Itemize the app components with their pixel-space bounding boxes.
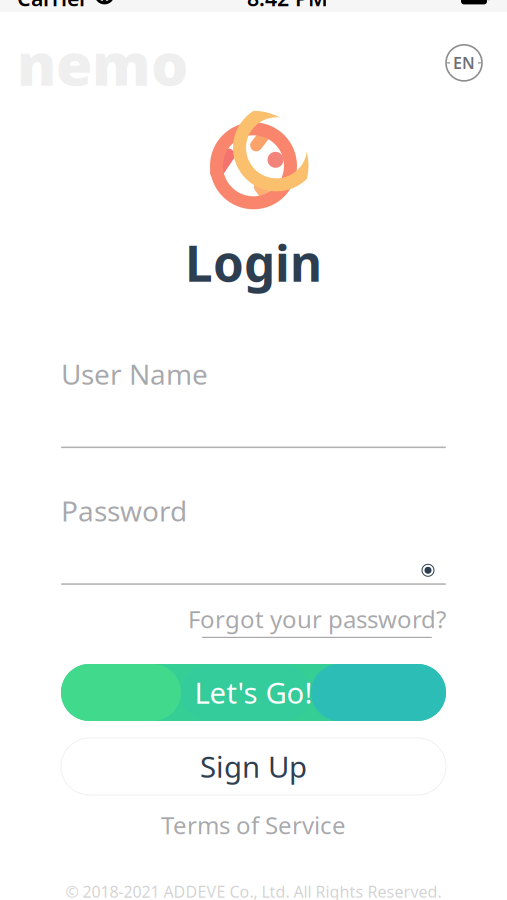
button[interactable]: Terms of Service xyxy=(141,803,366,847)
staticText: Password xyxy=(61,492,187,529)
button[interactable]: Show password xyxy=(410,558,446,582)
staticText: Login xyxy=(185,230,322,295)
button[interactable]: Language: English xyxy=(444,43,484,83)
staticText: © 2018-2021 ADDEVE Co., Ltd. All Rights … xyxy=(65,881,441,900)
staticText: Sign Up xyxy=(200,747,307,786)
button[interactable]: Sign Up xyxy=(0,738,507,795)
staticText: EN xyxy=(453,52,475,73)
staticText: Let's Go! xyxy=(194,673,312,712)
staticText: Forgot your password? xyxy=(188,603,446,635)
button[interactable]: Let's Go! xyxy=(0,664,507,721)
staticText: nemo xyxy=(17,24,188,102)
staticText: User Name xyxy=(61,355,208,392)
staticText: Terms of Service xyxy=(161,809,346,841)
staticText: Carrier xyxy=(17,0,88,12)
staticText: 8:42 PM xyxy=(247,0,328,12)
button[interactable]: Forgot your password? xyxy=(188,603,446,638)
